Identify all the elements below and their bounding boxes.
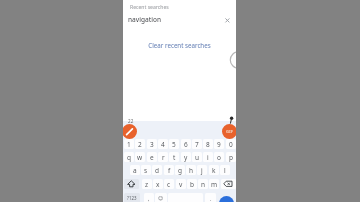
button[interactable]: c bbox=[164, 179, 174, 189]
staticText: v bbox=[179, 180, 183, 189]
button[interactable]: navigation bbox=[127, 13, 232, 26]
staticText: u bbox=[195, 153, 200, 162]
staticText: 4 bbox=[161, 140, 165, 149]
button[interactable]: 3 bbox=[147, 139, 157, 149]
button[interactable]: u bbox=[192, 152, 202, 162]
staticText: c bbox=[167, 180, 171, 189]
staticText: k bbox=[212, 166, 216, 175]
staticText: a bbox=[133, 166, 137, 175]
button[interactable]: 4 bbox=[158, 139, 168, 149]
button[interactable]: x bbox=[153, 179, 163, 189]
button[interactable]: m bbox=[209, 179, 219, 189]
staticText: p bbox=[229, 153, 233, 162]
button[interactable]: d bbox=[152, 165, 162, 175]
staticText: j bbox=[201, 166, 203, 175]
staticText: r bbox=[162, 153, 165, 162]
button[interactable]: e bbox=[147, 152, 157, 162]
button[interactable]: GIF bbox=[222, 124, 236, 139]
button[interactable]: z bbox=[142, 179, 152, 189]
button[interactable]: l bbox=[220, 165, 230, 175]
button[interactable]: , bbox=[144, 193, 154, 202]
staticText: 8 bbox=[206, 140, 210, 149]
staticText: l bbox=[224, 166, 226, 175]
staticText: . bbox=[210, 195, 212, 202]
staticText: d bbox=[155, 166, 159, 175]
button[interactable]: ☺ bbox=[155, 193, 167, 202]
button[interactable]: 9 bbox=[214, 139, 224, 149]
staticText: , bbox=[148, 195, 150, 202]
staticText: 6 bbox=[184, 140, 188, 149]
button[interactable]: Clear recent searches bbox=[123, 40, 236, 50]
button[interactable]: h bbox=[186, 165, 196, 175]
button[interactable]: 1 bbox=[124, 139, 134, 149]
staticText: 9 bbox=[217, 140, 221, 149]
button[interactable]: b bbox=[187, 179, 197, 189]
button[interactable]: 5 bbox=[169, 139, 179, 149]
button[interactable]: v bbox=[176, 179, 186, 189]
button[interactable]: 0 bbox=[226, 139, 236, 149]
staticText: 5 bbox=[172, 140, 176, 149]
staticText: 7 bbox=[195, 140, 199, 149]
staticText: 0 bbox=[229, 140, 233, 149]
button[interactable]: k bbox=[209, 165, 219, 175]
staticText: x bbox=[156, 180, 160, 189]
staticText: q bbox=[127, 153, 131, 162]
staticText: ?123 bbox=[127, 195, 137, 201]
staticText: f bbox=[168, 166, 171, 175]
button[interactable]: g bbox=[175, 165, 185, 175]
button[interactable]: q bbox=[124, 152, 134, 162]
button[interactable]: p bbox=[226, 152, 236, 162]
button[interactable] bbox=[124, 179, 139, 189]
staticText: Clear recent searches bbox=[148, 41, 211, 49]
staticText: b bbox=[190, 180, 194, 189]
button[interactable] bbox=[219, 196, 234, 202]
button[interactable] bbox=[123, 124, 137, 139]
button[interactable]: a bbox=[130, 165, 140, 175]
staticText: 2 bbox=[138, 140, 142, 149]
button[interactable]: i bbox=[203, 152, 213, 162]
staticText: 3 bbox=[150, 140, 154, 149]
button[interactable]: w bbox=[135, 152, 145, 162]
staticText: i bbox=[207, 153, 209, 162]
button[interactable]: t bbox=[169, 152, 179, 162]
button[interactable]: 2 bbox=[135, 139, 145, 149]
button[interactable]: 7 bbox=[192, 139, 202, 149]
staticText: h bbox=[189, 166, 194, 175]
button[interactable] bbox=[221, 179, 236, 189]
staticText: n bbox=[201, 180, 206, 189]
staticText: m bbox=[211, 180, 218, 189]
button[interactable]: f bbox=[164, 165, 174, 175]
staticText: Recent searches bbox=[130, 4, 169, 11]
staticText: s bbox=[144, 166, 148, 175]
button[interactable]: j bbox=[197, 165, 207, 175]
button[interactable]: 8 bbox=[203, 139, 213, 149]
staticText: o bbox=[217, 153, 221, 162]
button[interactable]: ?123 bbox=[124, 193, 140, 202]
button[interactable]: 6 bbox=[181, 139, 191, 149]
staticText: t bbox=[173, 153, 176, 162]
staticText: navigation bbox=[128, 15, 162, 24]
button[interactable]: s bbox=[141, 165, 151, 175]
staticText: y bbox=[184, 153, 188, 162]
button[interactable]: n bbox=[198, 179, 208, 189]
staticText: z bbox=[145, 180, 149, 189]
staticText: g bbox=[178, 166, 182, 175]
staticText: GIF bbox=[226, 129, 233, 135]
staticText: ☺ bbox=[158, 195, 164, 201]
button[interactable]: o bbox=[214, 152, 224, 162]
button[interactable]: r bbox=[158, 152, 168, 162]
staticText: 22 bbox=[128, 118, 134, 124]
staticText: e bbox=[150, 153, 154, 162]
staticText: w bbox=[137, 153, 143, 162]
button[interactable] bbox=[222, 15, 233, 26]
button[interactable]: . bbox=[205, 193, 216, 202]
staticText: 1 bbox=[127, 140, 131, 149]
button[interactable]: y bbox=[181, 152, 191, 162]
